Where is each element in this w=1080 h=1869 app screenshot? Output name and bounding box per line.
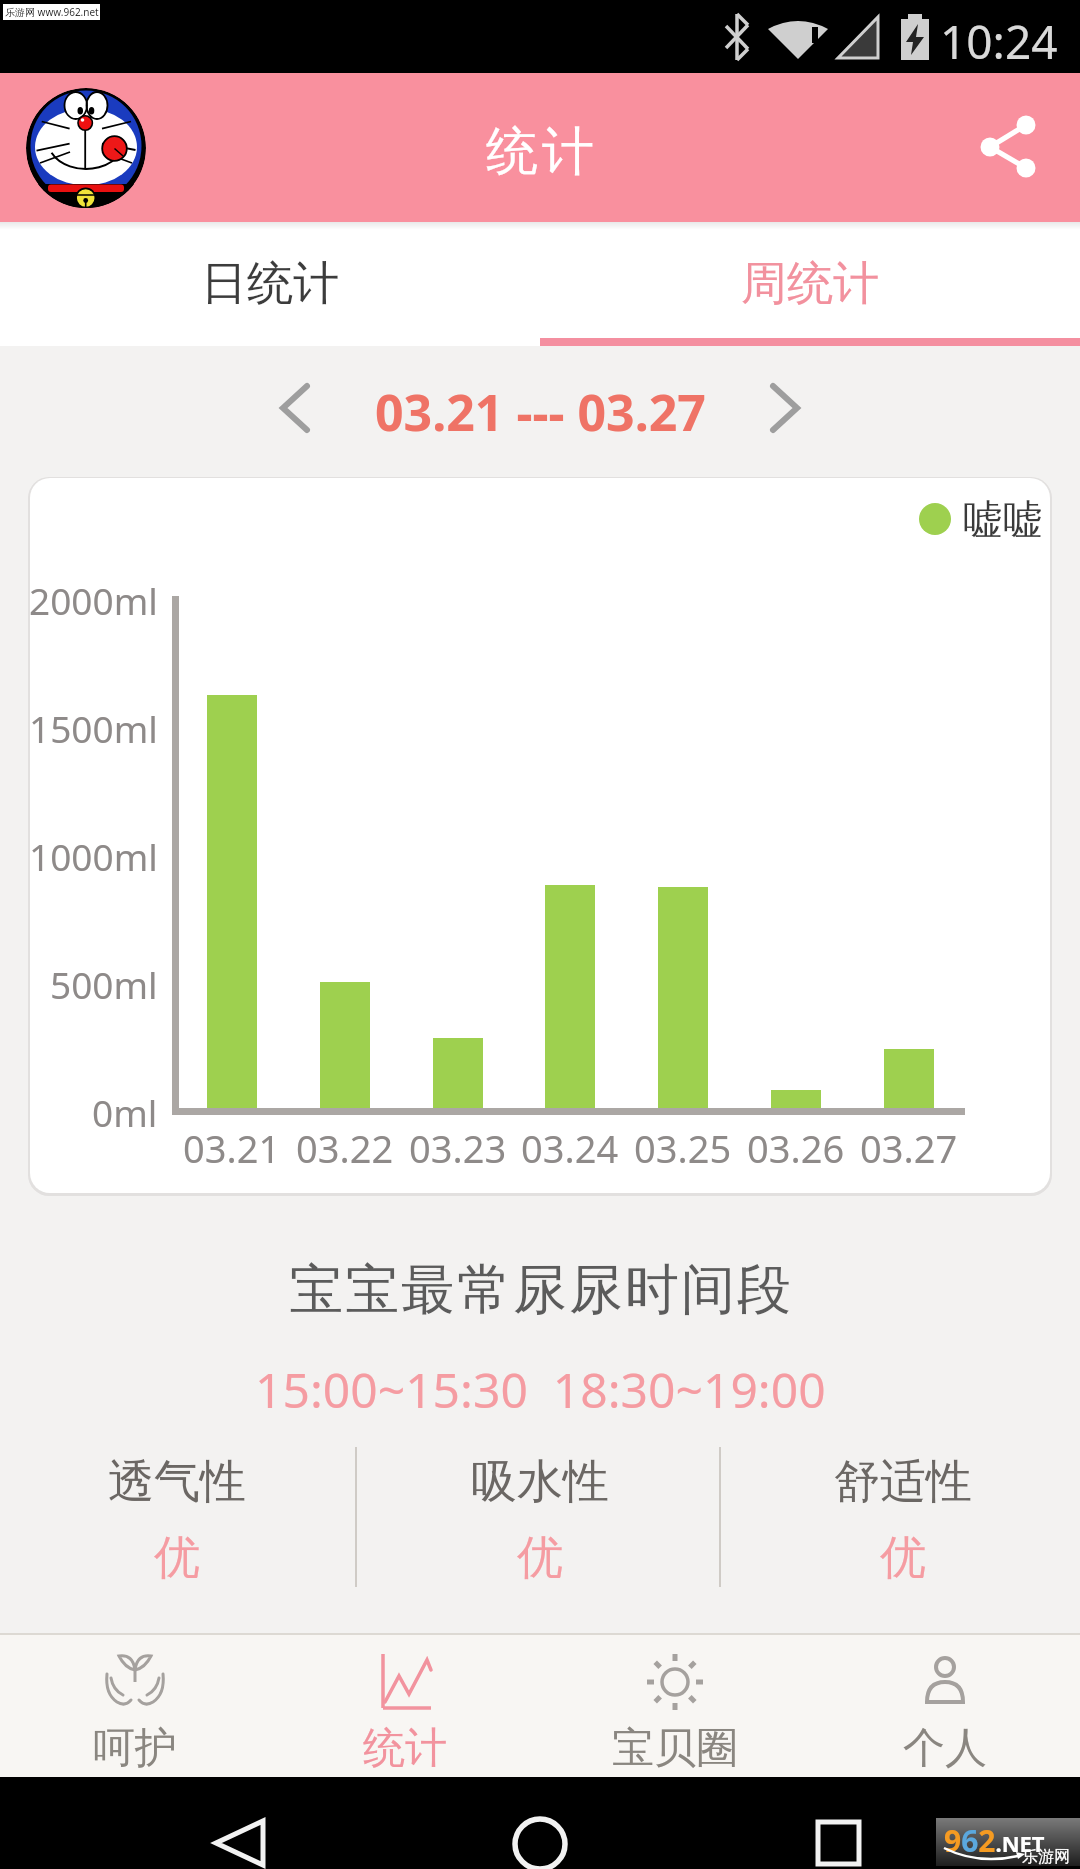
staticText: 舒适性 <box>834 1453 972 1511</box>
staticText: 宝贝圈 <box>612 1722 738 1770</box>
button[interactable]: 宝贝圈 <box>540 1633 810 1777</box>
button[interactable] <box>275 380 315 436</box>
button[interactable] <box>26 88 146 208</box>
staticText: 呵护 <box>93 1722 177 1770</box>
staticText: 500ml <box>50 959 158 1009</box>
button[interactable] <box>970 107 1046 187</box>
button[interactable]: 透气性 <box>37 1452 317 1512</box>
button[interactable]: 呵护 <box>0 1633 270 1777</box>
staticText: 03.26 <box>747 1122 845 1170</box>
button[interactable]: 周统计 <box>540 222 1080 346</box>
staticText: 1000ml <box>30 831 158 881</box>
staticText: 03.23 <box>409 1122 507 1170</box>
staticText: 0ml <box>92 1087 158 1137</box>
staticText: 03.22 <box>296 1122 394 1170</box>
staticText: 统计 <box>363 1722 447 1770</box>
staticText: 日统计 <box>201 255 339 313</box>
staticText: 个人 <box>903 1722 987 1770</box>
staticText: 优 <box>517 1529 563 1587</box>
button[interactable]: 吸水性 <box>400 1452 680 1512</box>
staticText: 统计 <box>484 119 596 179</box>
staticText: 优 <box>880 1529 926 1587</box>
staticText: 周统计 <box>741 255 879 313</box>
staticText: 03.21 <box>183 1122 281 1170</box>
button[interactable]: 统计 <box>270 1633 540 1777</box>
staticText: 03.24 <box>521 1122 619 1170</box>
staticText: 宝宝最常尿尿时间段 <box>288 1256 792 1324</box>
staticText: 10:24 <box>940 10 1058 64</box>
staticText: 1500ml <box>30 703 158 753</box>
staticText: 吸水性 <box>471 1453 609 1511</box>
staticText: 15:00~15:30 18:30~19:00 <box>255 1357 826 1419</box>
staticText: 透气性 <box>108 1453 246 1511</box>
button[interactable]: 日统计 <box>0 222 540 346</box>
button[interactable]: 舒适性 <box>763 1452 1043 1512</box>
staticText: 03.21 --- 03.27 <box>375 378 706 438</box>
staticText: 03.27 <box>860 1122 958 1170</box>
staticText: 优 <box>154 1529 200 1587</box>
button[interactable]: 个人 <box>810 1633 1080 1777</box>
staticText: 乐游网 www.962.net <box>5 5 99 19</box>
staticText: 962.NET <box>944 1820 1045 1861</box>
button[interactable] <box>765 380 805 436</box>
staticText: 嘘嘘 <box>963 494 1043 544</box>
staticText: 乐游网 <box>1022 1847 1070 1867</box>
staticText: 03.25 <box>634 1122 732 1170</box>
staticText: 2000ml <box>30 575 158 625</box>
